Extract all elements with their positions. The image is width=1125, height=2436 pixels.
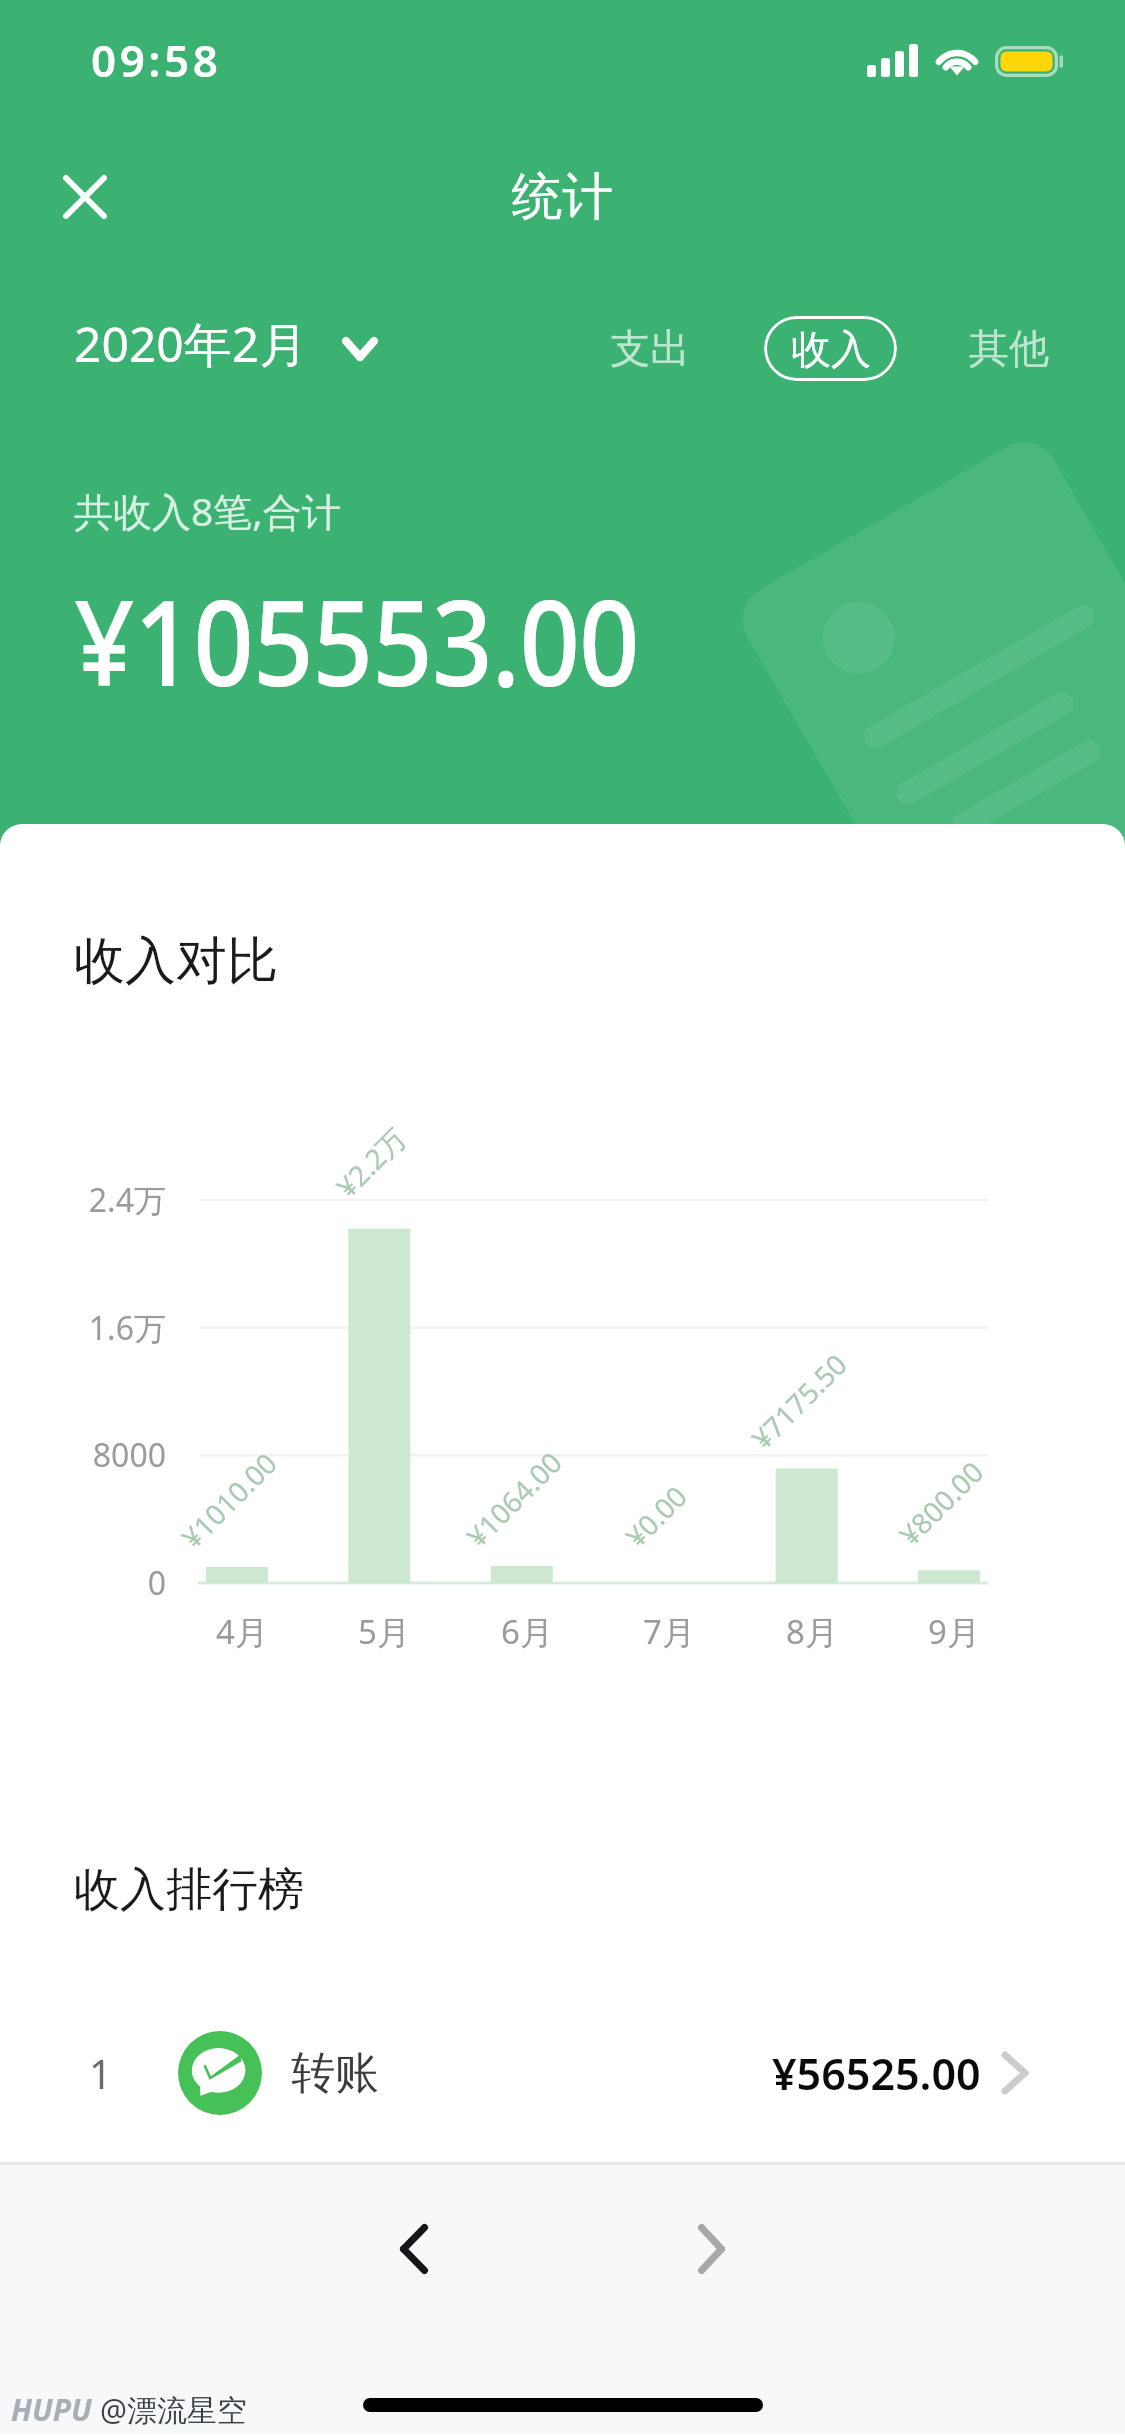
button[interactable]: 支出 [600,314,700,382]
button[interactable]: Next month [665,2203,757,2295]
staticText: 收入排行榜 [74,1861,304,1919]
staticText: 6月 [467,1609,587,1654]
staticText: 09:58 [91,30,222,90]
staticText: 2020年2月 [74,311,308,377]
staticText: 7月 [609,1609,729,1654]
button[interactable]: Previous month [368,2203,460,2295]
button[interactable]: 2020年2月 [70,307,382,381]
staticText: 0 [0,1561,166,1605]
staticText: ¥1064.00 [458,1443,570,1555]
staticText: 4月 [182,1609,302,1654]
staticText: 其他 [969,323,1049,373]
staticText: 共收入8笔,合计 [74,484,341,537]
staticText: 收入 [791,324,871,374]
staticText: ¥2.2万 [328,1119,414,1205]
button[interactable]: 收入 [764,316,897,381]
button[interactable]: Close [42,154,128,240]
staticText: 收入对比 [74,929,278,993]
staticText: 统计 [0,165,1125,229]
staticText: ¥105553.00 [74,560,639,721]
button[interactable]: 1 [0,2003,1125,2143]
staticText: 8月 [752,1609,872,1654]
button[interactable]: 其他 [959,314,1059,382]
staticText: 5月 [324,1609,444,1654]
staticText: 支出 [610,323,690,373]
staticText: 8000 [0,1433,166,1477]
staticText: ¥0.00 [617,1477,695,1555]
staticText: ¥800.00 [891,1453,991,1553]
staticText: 1 [89,2046,112,2100]
staticText: 9月 [894,1609,1014,1654]
staticText: 1.6万 [0,1306,166,1350]
staticText: @漂流星空 [100,2389,247,2430]
staticText: ¥1010.00 [173,1444,285,1556]
staticText: ¥7175.50 [743,1345,855,1457]
staticText: 转账 [291,2046,379,2101]
staticText: ¥56525.00 [772,2044,981,2103]
staticText: 2.4万 [0,1178,166,1222]
staticText: HUPU [11,2389,92,2430]
